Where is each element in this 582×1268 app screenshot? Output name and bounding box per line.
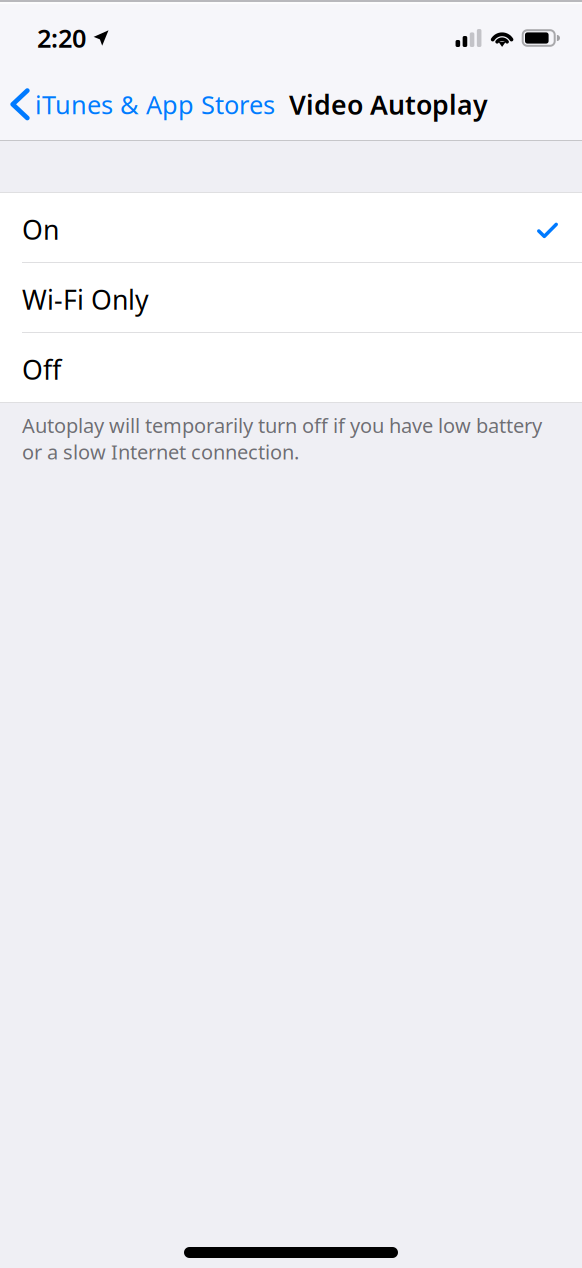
button[interactable]: iTunes & App Stores [0, 70, 279, 139]
staticText: iTunes & App Stores [35, 88, 275, 121]
staticText: Autoplay will temporarily turn off if yo… [22, 412, 542, 465]
staticText: Off [22, 352, 61, 387]
staticText: Wi-Fi Only [22, 282, 149, 317]
staticText: 2:20 [37, 21, 86, 55]
button[interactable]: On [0, 193, 582, 263]
staticText: On [22, 212, 59, 247]
staticText: Video Autoplay [289, 87, 488, 122]
button[interactable]: Off [0, 333, 582, 403]
button[interactable]: Wi-Fi Only [0, 263, 582, 333]
